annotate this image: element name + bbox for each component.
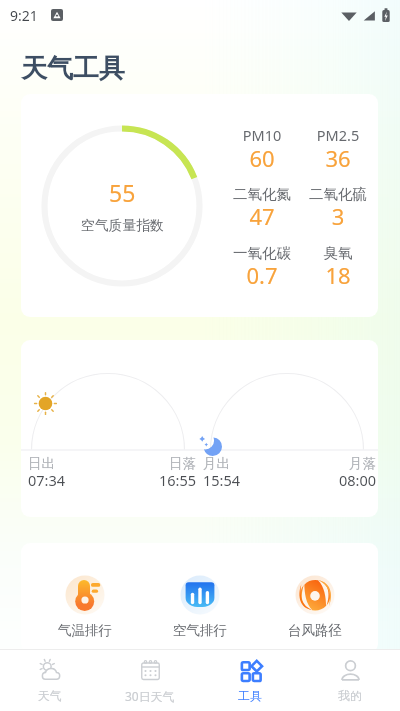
staticText: PM10 [212, 125, 312, 145]
staticText: 我的 [338, 688, 362, 703]
button[interactable]: Mine [300, 650, 400, 711]
button[interactable]: Weather [0, 650, 100, 711]
staticText: 二氧化氮 [212, 185, 312, 203]
staticText: 18 [288, 260, 378, 290]
other: Mine [338, 658, 363, 683]
button[interactable]: Tools [200, 650, 300, 711]
staticText: 一氧化碳 [212, 244, 312, 262]
staticText: 空气排行 [155, 622, 245, 639]
staticText: 月落 [316, 455, 376, 472]
other: Weather [38, 658, 63, 683]
other: Tools [238, 658, 263, 683]
staticText: 55 [109, 177, 136, 208]
button[interactable]: 30 day [100, 650, 200, 711]
other: 30 day [138, 658, 163, 683]
staticText: 气温排行 [40, 622, 130, 639]
staticText: 47 [212, 201, 312, 231]
button[interactable]: 气温排行 [40, 573, 130, 639]
staticText: 工具 [238, 688, 262, 703]
button[interactable]: 空气排行 [155, 573, 245, 639]
staticText: 天气工具 [21, 52, 125, 85]
staticText: 臭氧 [288, 244, 378, 262]
staticText: 台风路径 [270, 622, 360, 639]
staticText: 3 [288, 201, 378, 231]
staticText: 07:34 [28, 470, 88, 490]
staticText: 16:55 [136, 470, 196, 490]
staticText: 60 [212, 143, 312, 173]
staticText: PM2.5 [288, 125, 378, 145]
staticText: 0.7 [212, 260, 312, 290]
staticText: 天气 [38, 688, 62, 703]
staticText: 30日天气 [125, 688, 175, 704]
button[interactable]: 台风路径 [270, 573, 360, 639]
staticText: 二氧化硫 [288, 185, 378, 203]
staticText: 日出 [28, 455, 88, 472]
staticText: 日落 [136, 455, 196, 472]
staticText: 空气质量指数 [81, 217, 164, 234]
staticText: 36 [288, 143, 378, 173]
staticText: 月出 [203, 455, 263, 472]
staticText: 9:21 [10, 6, 38, 25]
staticText: 08:00 [316, 470, 376, 490]
staticText: 15:54 [203, 470, 263, 490]
